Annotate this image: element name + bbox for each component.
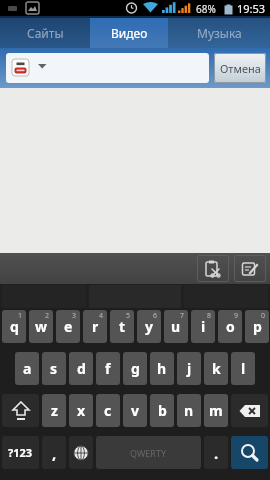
button[interactable] xyxy=(197,255,229,282)
staticText: 7 xyxy=(180,311,185,321)
button[interactable] xyxy=(2,394,39,427)
staticText: Музыка xyxy=(197,25,242,41)
staticText: 19:53 xyxy=(237,1,266,16)
button[interactable]: l xyxy=(231,352,255,385)
button[interactable]: j xyxy=(177,352,201,385)
staticText: b xyxy=(158,401,167,420)
staticText: 6 xyxy=(153,311,158,321)
staticText: e xyxy=(64,317,73,336)
button[interactable]: u xyxy=(164,310,188,343)
staticText: j xyxy=(187,359,192,378)
staticText: y xyxy=(145,317,153,336)
staticText: l xyxy=(241,359,246,378)
staticText: 3 xyxy=(72,311,77,321)
staticText: q xyxy=(10,317,19,336)
button[interactable]: z xyxy=(42,394,66,427)
staticText: 2 xyxy=(45,311,50,321)
staticText: w xyxy=(35,317,47,336)
button[interactable]: c xyxy=(96,394,120,427)
button[interactable]: b xyxy=(150,394,174,427)
button[interactable]: t xyxy=(110,310,134,343)
button[interactable]: , xyxy=(42,436,66,469)
button[interactable]: QWERTY xyxy=(96,436,201,469)
staticText: 4 xyxy=(99,311,104,321)
button[interactable]: Музыка xyxy=(168,18,270,48)
button[interactable]: Отмена xyxy=(214,53,266,83)
staticText: 0 xyxy=(261,311,266,321)
staticText: d xyxy=(77,359,86,378)
staticText: Отмена xyxy=(220,61,261,76)
staticText: g xyxy=(131,359,140,378)
button[interactable]: v xyxy=(123,394,147,427)
button[interactable]: ?123 xyxy=(2,436,39,469)
staticText: v xyxy=(131,401,139,420)
staticText: . xyxy=(214,443,219,463)
staticText: 8 xyxy=(207,311,212,321)
staticText: k xyxy=(212,359,221,378)
button[interactable]: i xyxy=(191,310,215,343)
button[interactable]: w xyxy=(29,310,53,343)
button[interactable]: r xyxy=(83,310,107,343)
staticText: 9 xyxy=(234,311,239,321)
button[interactable]: Сайты xyxy=(0,18,90,48)
staticText: 5 xyxy=(126,311,131,321)
button[interactable]: k xyxy=(204,352,228,385)
staticText: u xyxy=(171,317,181,336)
button[interactable]: f xyxy=(96,352,120,385)
staticText: , xyxy=(52,443,57,463)
button[interactable] xyxy=(234,255,266,282)
staticText: c xyxy=(104,401,112,420)
button[interactable]: Видео xyxy=(90,18,168,48)
button[interactable] xyxy=(231,436,268,469)
button[interactable]: h xyxy=(150,352,174,385)
staticText: t xyxy=(119,317,126,336)
staticText: QWERTY xyxy=(130,447,167,459)
staticText: i xyxy=(201,317,206,336)
button[interactable]: n xyxy=(177,394,201,427)
staticText: 68% xyxy=(196,2,216,16)
staticText: o xyxy=(226,317,235,336)
button[interactable]: y xyxy=(137,310,161,343)
button[interactable]: e xyxy=(56,310,80,343)
staticText: x xyxy=(77,401,86,420)
staticText: m xyxy=(209,401,223,420)
button[interactable]: m xyxy=(204,394,228,427)
staticText: 1 xyxy=(18,311,23,321)
button[interactable]: x xyxy=(69,394,93,427)
button[interactable] xyxy=(231,394,268,427)
button[interactable]: q xyxy=(2,310,26,343)
staticText: Видео xyxy=(111,25,148,41)
button[interactable]: . xyxy=(204,436,228,469)
button[interactable] xyxy=(69,436,93,469)
staticText: z xyxy=(51,401,58,420)
button[interactable]: p xyxy=(245,310,269,343)
button[interactable]: d xyxy=(69,352,93,385)
button[interactable] xyxy=(6,53,209,83)
staticText: ?123 xyxy=(8,445,33,460)
staticText: a xyxy=(23,359,32,378)
staticText: p xyxy=(253,317,262,336)
staticText: Сайты xyxy=(27,25,64,41)
button[interactable]: s xyxy=(42,352,66,385)
staticText: r xyxy=(92,317,99,336)
staticText: h xyxy=(157,359,167,378)
button[interactable]: g xyxy=(123,352,147,385)
staticText: f xyxy=(105,359,111,378)
button[interactable]: o xyxy=(218,310,242,343)
staticText: s xyxy=(50,359,58,378)
button[interactable]: a xyxy=(15,352,39,385)
staticText: n xyxy=(184,401,194,420)
button[interactable] xyxy=(168,18,270,48)
